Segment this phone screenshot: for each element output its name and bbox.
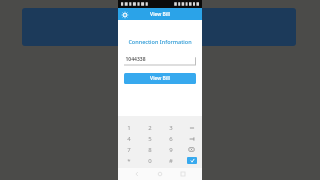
staticText: View Bill — [150, 11, 170, 18]
button[interactable]: 4 — [118, 133, 139, 144]
staticText: 6 — [169, 135, 173, 143]
button[interactable]: Menu — [120, 10, 129, 19]
staticText: View Bill — [150, 75, 170, 82]
staticText: * — [127, 157, 131, 165]
staticText: 4 — [127, 135, 131, 143]
button[interactable]: Recent apps — [179, 170, 187, 178]
staticText: # — [169, 157, 173, 165]
staticText: 2 — [148, 124, 152, 132]
button[interactable]: 2 — [139, 122, 160, 133]
button[interactable]: 0 — [139, 155, 160, 166]
staticText: 7 — [127, 146, 131, 154]
button[interactable]: Back — [133, 170, 141, 178]
staticText: 1 — [127, 124, 131, 132]
button[interactable]: Enter — [181, 155, 202, 166]
button[interactable]: Dash — [181, 122, 202, 133]
button[interactable]: Backspace — [181, 144, 202, 155]
button[interactable]: # — [160, 155, 181, 166]
staticText: 5 — [148, 135, 152, 143]
button[interactable]: 1044338 — [124, 54, 196, 65]
button[interactable]: * — [118, 155, 139, 166]
button[interactable]: 6 — [160, 133, 181, 144]
button[interactable]: 5 — [139, 133, 160, 144]
staticText: 9 — [169, 146, 173, 154]
staticText: 3 — [169, 124, 173, 132]
button[interactable]: 3 — [160, 122, 181, 133]
button[interactable]: Tab — [181, 133, 202, 144]
button[interactable]: 8 — [139, 144, 160, 155]
button[interactable]: View Bill — [124, 73, 196, 84]
staticText: Connection Information — [128, 38, 192, 45]
staticText: 8 — [148, 146, 152, 154]
button[interactable]: 1 — [118, 122, 139, 133]
button[interactable]: 7 — [118, 144, 139, 155]
button[interactable]: 9 — [160, 144, 181, 155]
staticText: 0 — [148, 157, 152, 165]
button[interactable]: Home — [156, 170, 164, 178]
staticText: 1044338 — [125, 56, 146, 63]
